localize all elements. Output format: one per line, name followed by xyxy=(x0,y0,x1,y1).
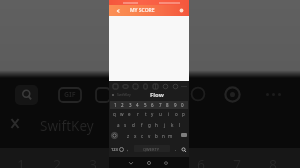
staticText: 7 xyxy=(233,155,242,168)
button[interactable]: k xyxy=(169,121,176,128)
button[interactable]: Menu xyxy=(178,7,185,14)
button[interactable]: Recents xyxy=(163,160,169,166)
staticText: g xyxy=(148,122,151,128)
staticText: . xyxy=(175,146,177,153)
staticText: s xyxy=(124,122,127,128)
button[interactable]: Emoji xyxy=(119,147,124,152)
staticText: 1 xyxy=(114,102,117,108)
button[interactable]: s xyxy=(122,121,129,128)
button[interactable]: t xyxy=(142,110,149,117)
button[interactable]: Back xyxy=(114,7,121,14)
button[interactable]: 5 xyxy=(142,101,149,109)
staticText: 3 xyxy=(129,102,132,108)
button[interactable]: i xyxy=(165,110,172,117)
staticText: 2 xyxy=(121,102,124,108)
staticText: c xyxy=(141,133,144,139)
button[interactable]: n xyxy=(160,132,167,139)
button[interactable]: u xyxy=(157,110,164,117)
staticText: u xyxy=(159,111,162,117)
staticText: y xyxy=(151,111,154,117)
button[interactable]: Settings xyxy=(224,86,241,103)
button[interactable]: Tool 1 xyxy=(110,82,120,90)
button[interactable]: 1 xyxy=(112,101,119,109)
staticText: GIF xyxy=(64,90,76,100)
button[interactable]: Tool 3 xyxy=(130,82,140,90)
staticText: n xyxy=(162,133,165,139)
button[interactable]: Emoji xyxy=(190,86,206,102)
button[interactable]: 6 xyxy=(149,101,156,109)
staticText: f xyxy=(141,122,143,128)
button[interactable]: Tool 2 xyxy=(120,82,130,90)
staticText: 8 xyxy=(269,155,278,168)
button[interactable]: c xyxy=(139,132,146,139)
staticText: a xyxy=(117,122,120,128)
button[interactable]: g xyxy=(146,121,153,128)
button[interactable]: l xyxy=(176,121,183,128)
staticText: z xyxy=(127,133,130,139)
button[interactable]: m xyxy=(167,132,174,139)
button[interactable]: Tool 4 xyxy=(140,82,150,90)
button[interactable]: 3 xyxy=(127,101,134,109)
staticText: 123 xyxy=(111,147,118,152)
button[interactable]: a xyxy=(115,121,122,128)
staticText: 5 xyxy=(161,155,170,168)
button[interactable]: 2 xyxy=(119,101,126,109)
button[interactable]: d xyxy=(130,121,137,128)
staticText: MY SCORE xyxy=(130,7,155,14)
staticText: 9 xyxy=(174,102,177,108)
button[interactable]: p xyxy=(180,110,187,117)
button[interactable]: f xyxy=(138,121,145,128)
staticText: 5 xyxy=(144,102,147,108)
button[interactable]: Shift xyxy=(111,132,118,139)
button[interactable]: r xyxy=(134,110,141,117)
staticText: i xyxy=(168,111,170,117)
staticText: x xyxy=(134,133,137,139)
button[interactable]: v xyxy=(146,132,153,139)
button[interactable]: Home xyxy=(146,160,152,166)
staticText: 8 xyxy=(166,102,169,108)
button[interactable]: Back xyxy=(128,160,134,166)
button[interactable]: More options xyxy=(266,91,282,97)
staticText: 3 xyxy=(89,155,98,168)
staticText: 6 xyxy=(197,155,206,168)
button[interactable]: Search xyxy=(15,85,38,105)
staticText: 2 xyxy=(53,155,62,168)
button[interactable]: q xyxy=(111,110,118,117)
button[interactable]: Stickers xyxy=(94,86,112,104)
button[interactable]: x xyxy=(132,132,139,139)
staticText: p xyxy=(182,111,185,117)
button[interactable]: 8 xyxy=(164,101,171,109)
button[interactable]: b xyxy=(153,132,160,139)
staticText: 7 xyxy=(159,102,162,108)
button[interactable]: w xyxy=(118,110,125,117)
button[interactable]: Tool 6 xyxy=(160,82,170,90)
button[interactable]: 7 xyxy=(157,101,164,109)
button[interactable]: h xyxy=(153,121,160,128)
button[interactable]: Close xyxy=(10,117,20,130)
staticText: t xyxy=(145,111,147,117)
button[interactable]: 4 xyxy=(134,101,141,109)
button[interactable]: y xyxy=(149,110,156,117)
button[interactable]: Search xyxy=(181,147,187,153)
staticText: h xyxy=(155,122,158,128)
staticText: q xyxy=(113,111,116,117)
staticText: o xyxy=(175,111,178,117)
staticText: 0 xyxy=(181,102,184,108)
staticText: v xyxy=(148,133,151,139)
button[interactable]: Close xyxy=(111,93,115,97)
button[interactable]: 123 xyxy=(111,147,118,152)
button[interactable]: 9 xyxy=(172,101,179,109)
staticText: 4 xyxy=(136,102,139,108)
button[interactable]: 0 xyxy=(179,101,186,109)
button[interactable]: o xyxy=(173,110,180,117)
staticText: Flow xyxy=(150,91,164,98)
button[interactable]: Backspace xyxy=(181,133,187,137)
button[interactable]: GIF xyxy=(58,88,82,102)
button[interactable]: e xyxy=(126,110,133,117)
button[interactable]: Tool 5 xyxy=(150,82,160,90)
button[interactable]: z xyxy=(125,132,132,139)
button[interactable]: j xyxy=(161,121,168,128)
button[interactable]: Tool 7 xyxy=(170,82,180,90)
staticText: l xyxy=(179,122,181,128)
staticText: b xyxy=(155,133,158,139)
